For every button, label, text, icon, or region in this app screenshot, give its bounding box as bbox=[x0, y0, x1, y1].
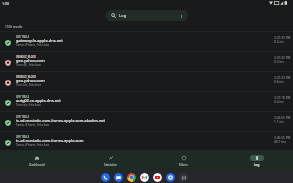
staticText: 3:36:55 PM bbox=[274, 116, 291, 120]
staticText: geo.yahoo.com bbox=[16, 78, 45, 83]
staticText: Filters bbox=[179, 163, 188, 167]
staticText: ic-sd.mzstatic.com.itunes-apple.com.akad… bbox=[16, 118, 106, 123]
staticText: LIFE TRULE bbox=[16, 35, 30, 38]
staticText: Log bbox=[119, 13, 127, 19]
button[interactable]: DEFAULT_BLOCK bbox=[0, 52, 293, 72]
staticText: 3:36:55 PM bbox=[274, 136, 291, 140]
staticText: Dashboard bbox=[29, 163, 45, 167]
staticText: 0.6 ms bbox=[274, 80, 284, 84]
staticText: DEFAULT_BLOCK bbox=[16, 55, 36, 58]
staticText: 3:37:35 PM bbox=[274, 36, 291, 40]
button[interactable]: Log bbox=[220, 151, 293, 170]
staticText: Tania-iPhone, fritz.box bbox=[16, 43, 50, 47]
staticText: 3:37:18 PM bbox=[274, 96, 291, 100]
staticText: 0.2 ms bbox=[274, 40, 284, 44]
button[interactable]: Chrome bbox=[127, 173, 136, 182]
staticText: 1106 results bbox=[5, 25, 23, 29]
button[interactable]: Filters bbox=[147, 151, 220, 170]
staticText: Tom air, fritz.box bbox=[16, 103, 41, 107]
button[interactable]: Log bbox=[106, 10, 188, 21]
button[interactable]: Messages bbox=[114, 173, 123, 182]
button[interactable]: LIFE TRULE bbox=[0, 32, 293, 52]
button[interactable]: Gmail bbox=[140, 173, 149, 182]
staticText: DEFAULT_BLOCK bbox=[16, 75, 36, 78]
button[interactable]: DEFAULT_BLOCK bbox=[0, 72, 293, 92]
staticText: 0.4 ms bbox=[274, 100, 284, 104]
staticText: autg02.ce.apple-dns.net bbox=[16, 98, 61, 103]
button[interactable]: More options bbox=[178, 13, 184, 19]
button[interactable]: LIFE TRULE bbox=[0, 92, 293, 112]
staticText: Tom tör, fritz.box bbox=[16, 83, 42, 87]
staticText: Tom 4K, fritz.box bbox=[16, 63, 42, 67]
button[interactable]: Phone bbox=[101, 173, 110, 182]
staticText: 1.1 ms bbox=[274, 120, 284, 124]
staticText: LIFE TRULE bbox=[16, 135, 30, 138]
staticText: 1:08 bbox=[2, 1, 10, 6]
staticText: 0.3 ms bbox=[274, 60, 284, 64]
button[interactable]: LIFE TRULE bbox=[0, 112, 293, 132]
staticText: Tania-iPhone, fritz.box bbox=[16, 123, 50, 127]
staticText: 40.7 ms bbox=[274, 140, 286, 144]
button[interactable]: Statistics bbox=[74, 151, 147, 170]
staticText: LIFE TRULE bbox=[16, 115, 30, 118]
button[interactable]: Dashboard bbox=[0, 151, 74, 170]
staticText: Log bbox=[254, 163, 260, 167]
staticText: Statistics bbox=[104, 163, 117, 167]
staticText: Tania-iPhone, fritz.box bbox=[16, 143, 50, 147]
staticText: 3:37:33 PM bbox=[274, 56, 291, 60]
staticText: LIFE TRULE bbox=[16, 95, 30, 98]
button[interactable]: LIFE TRULE bbox=[0, 132, 293, 151]
staticText: geo.yahoo.com bbox=[16, 58, 45, 63]
button[interactable]: YouTube bbox=[153, 173, 162, 182]
staticText: ic-sd.mzstatic.com.itunes-apple.com bbox=[16, 138, 84, 143]
button[interactable]: All apps bbox=[179, 173, 188, 182]
staticText: 3:37:23 PM bbox=[274, 76, 291, 80]
button[interactable]: Settings bbox=[166, 173, 175, 182]
staticText: gateway.fe.apple-dns.net bbox=[16, 38, 63, 43]
